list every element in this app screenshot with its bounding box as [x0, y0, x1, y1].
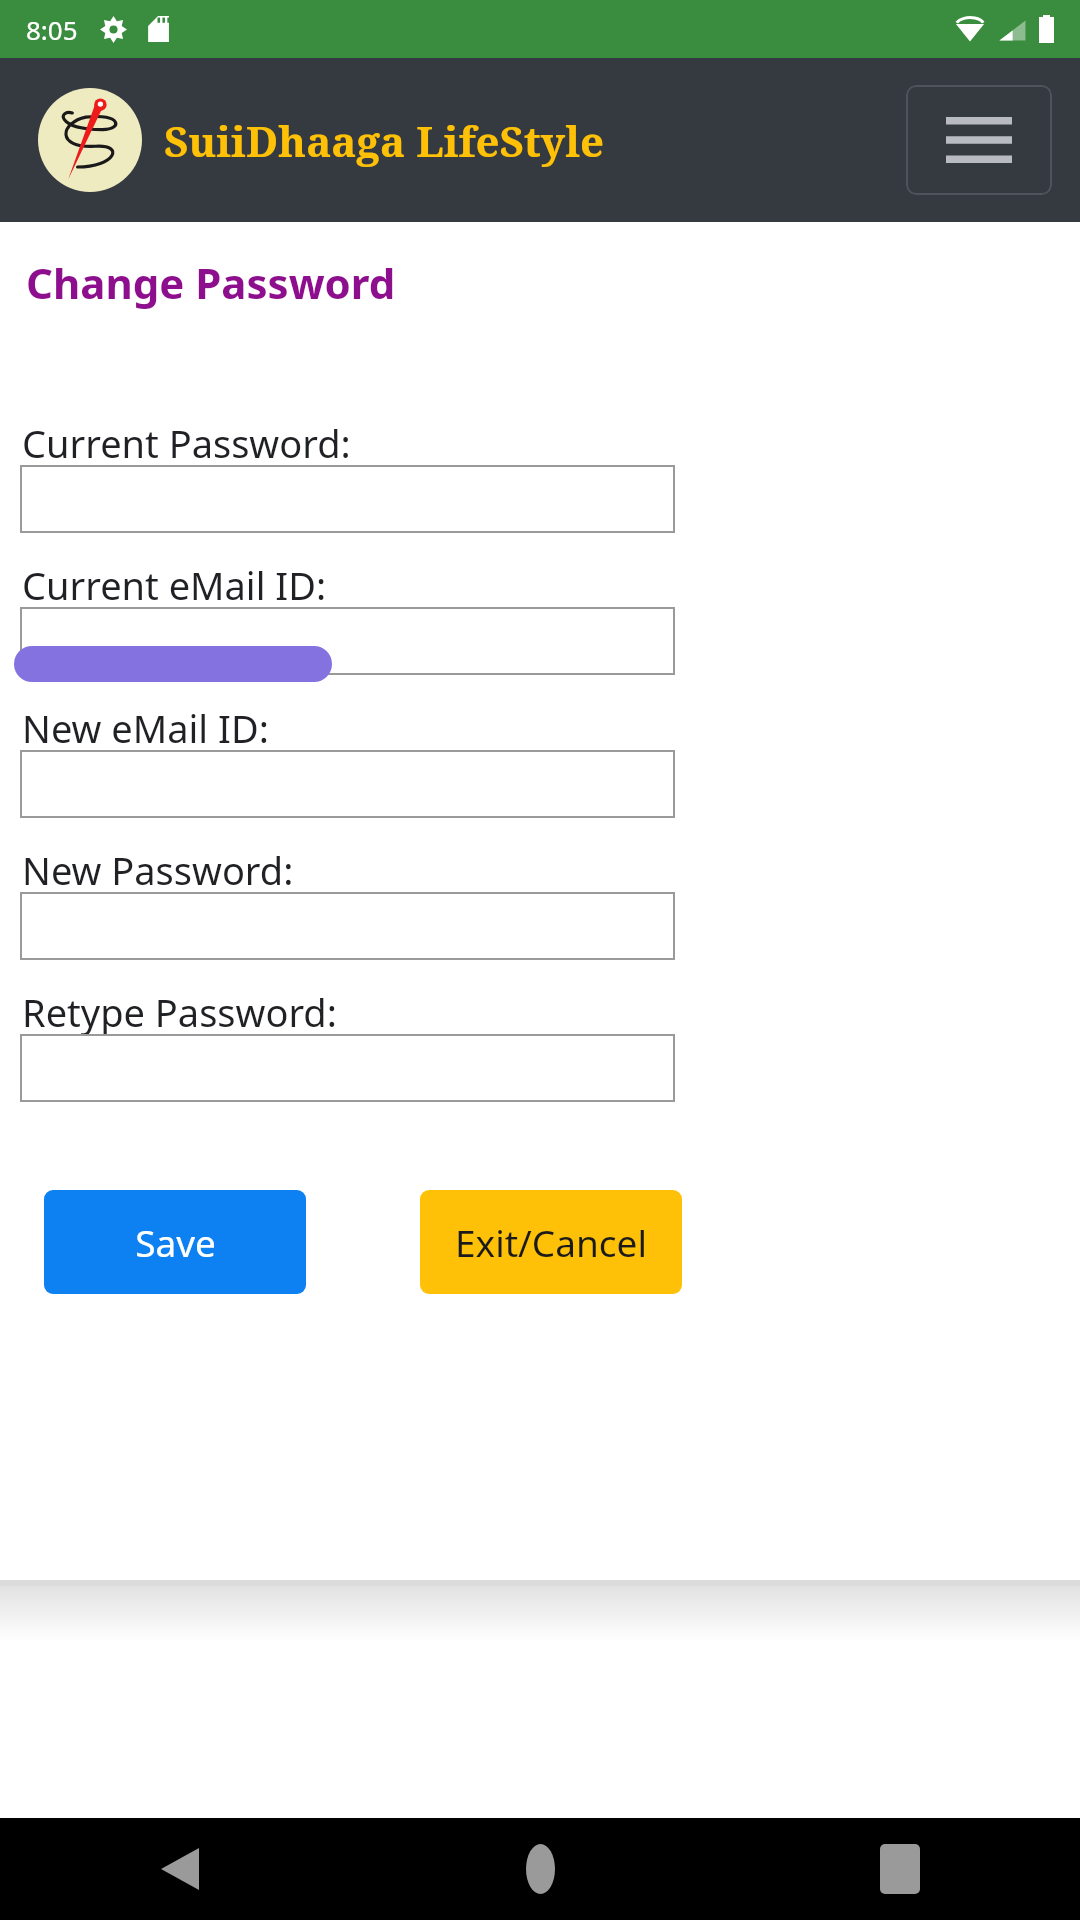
button[interactable]: [20, 1034, 675, 1102]
button[interactable]: Home: [360, 1818, 720, 1920]
staticText: SuiiDhaaga LifeStyle: [164, 112, 604, 169]
staticText: Exit/Cancel: [455, 1217, 647, 1267]
button[interactable]: [20, 892, 675, 960]
button[interactable]: [20, 750, 675, 818]
staticText: 8:05: [26, 12, 78, 47]
button[interactable]: Open navigation menu: [906, 85, 1052, 195]
button[interactable]: Exit/Cancel: [420, 1190, 682, 1294]
staticText: Change Password: [26, 254, 396, 311]
button[interactable]: Recent apps: [720, 1818, 1080, 1920]
button[interactable]: Back: [0, 1818, 360, 1920]
staticText: Current Password:: [22, 417, 351, 469]
staticText: Retype Password:: [22, 986, 337, 1038]
button[interactable]: [20, 607, 675, 675]
button[interactable]: Save: [44, 1190, 306, 1294]
button[interactable]: [20, 465, 675, 533]
staticText: New eMail ID:: [22, 702, 269, 754]
staticText: Current eMail ID:: [22, 559, 327, 611]
staticText: New Password:: [22, 844, 294, 896]
staticText: Save: [135, 1217, 216, 1267]
